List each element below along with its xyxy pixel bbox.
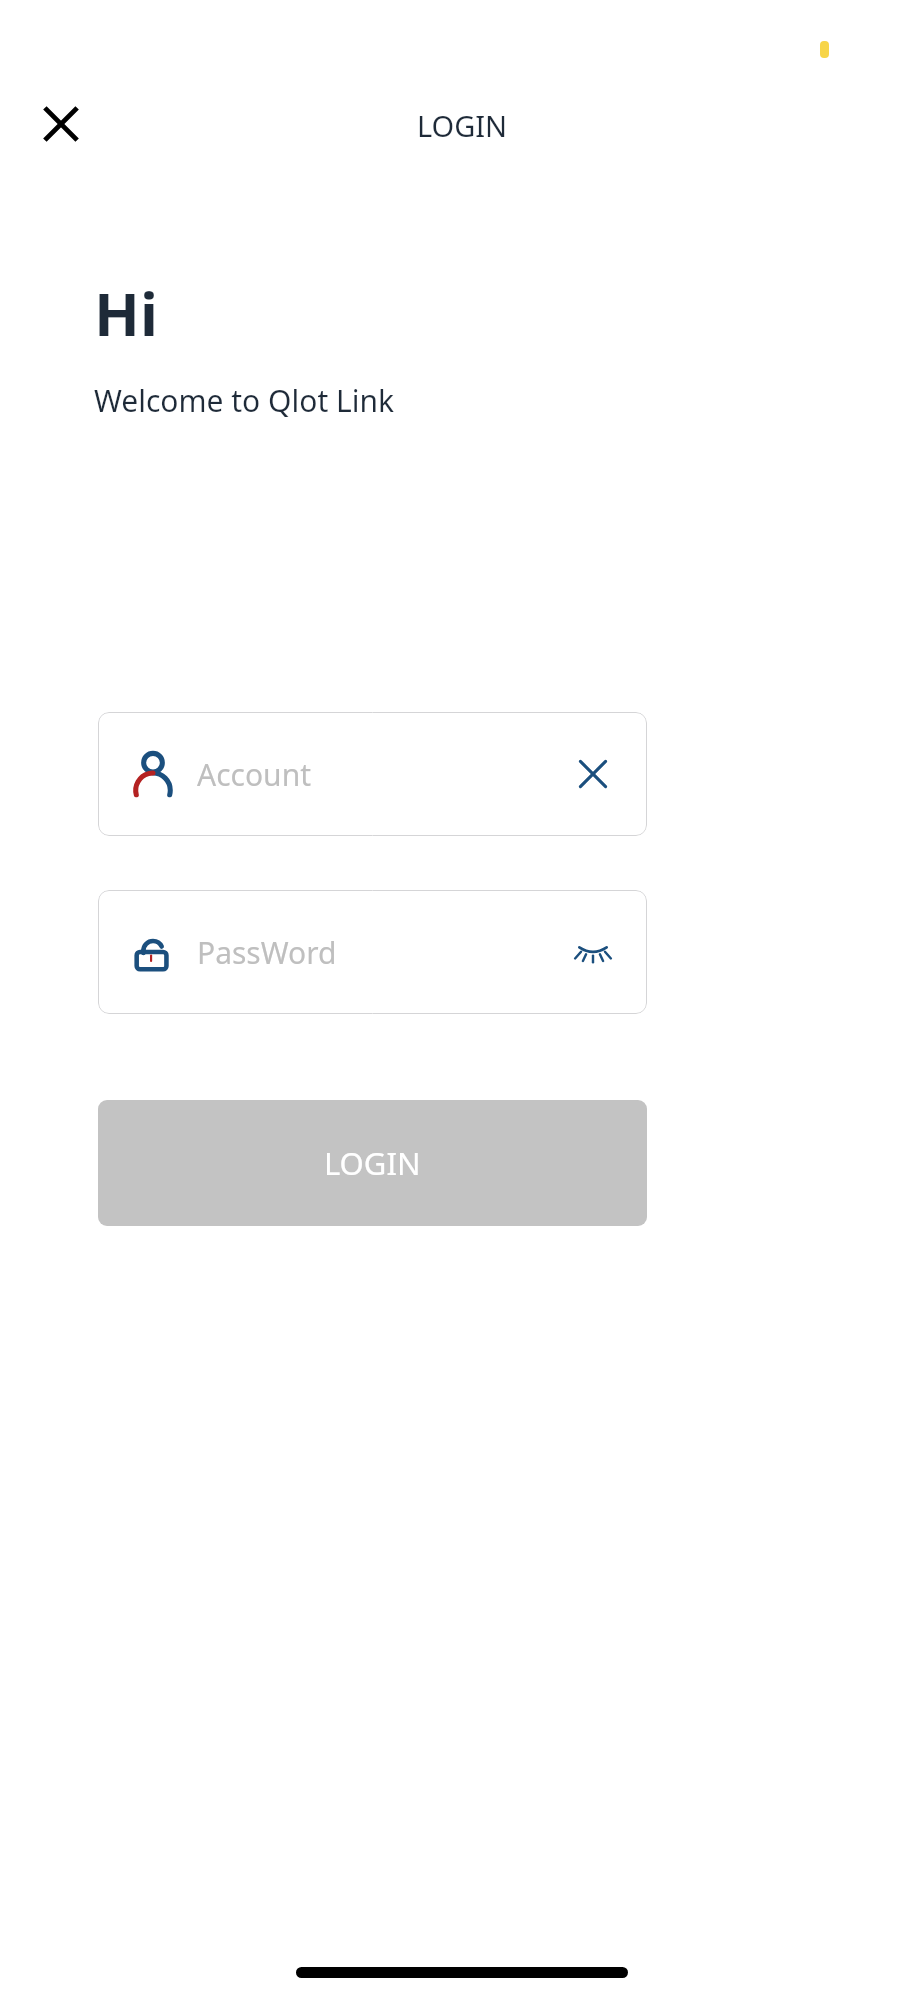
button[interactable]: Show password bbox=[557, 916, 629, 988]
button[interactable]: PassWord bbox=[98, 890, 647, 1014]
staticText: PassWord bbox=[197, 932, 557, 973]
button[interactable]: Clear account bbox=[557, 738, 629, 810]
staticText: Welcome to Qlot Link bbox=[94, 380, 395, 421]
staticText: LOGIN bbox=[0, 106, 924, 145]
button[interactable]: Close bbox=[28, 91, 94, 157]
button[interactable]: Account bbox=[98, 712, 647, 836]
staticText: LOGIN bbox=[324, 1142, 421, 1184]
staticText: Account bbox=[197, 754, 557, 795]
button[interactable]: LOGIN bbox=[98, 1100, 647, 1226]
staticText: Hi bbox=[94, 272, 158, 354]
